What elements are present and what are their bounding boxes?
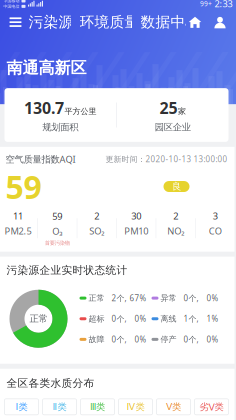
staticText: PM10 [124, 225, 148, 237]
staticText: CO [209, 225, 222, 237]
button[interactable]: 污染源 [28, 11, 70, 33]
staticText: 99+ [200, 0, 212, 8]
staticText: 污染源企业实时状态统计 [6, 264, 127, 277]
staticText: PM2.5 [4, 225, 31, 237]
staticText: 平方公里 [65, 106, 97, 116]
staticText: 全区各类水质分布 [6, 377, 94, 390]
button[interactable]: 劣Ⅴ类 [194, 399, 228, 415]
staticText: 环境质量 [79, 13, 139, 31]
staticText: NO₂ [167, 225, 184, 237]
staticText: 59 [5, 165, 41, 208]
staticText: 25 [159, 97, 177, 118]
staticText: 1% [206, 313, 218, 324]
staticText: 2:33 [214, 0, 232, 10]
staticText: Ⅰ类 [15, 401, 27, 413]
staticText: 2 [173, 210, 178, 222]
staticText: 污染源 [28, 13, 73, 31]
staticText: O₃ [52, 225, 62, 237]
button[interactable]: 数据中心 [140, 11, 185, 33]
staticText: 0% [134, 334, 146, 345]
button[interactable]: 环境质量 [79, 11, 131, 33]
staticText: Ⅳ类 [126, 401, 144, 413]
staticText: 良 [172, 181, 181, 192]
staticText: 0个, [111, 334, 126, 345]
staticText: 空气质量指数AQI [5, 153, 75, 165]
staticText: 南通高新区 [6, 58, 86, 78]
staticText: 正常 [88, 293, 104, 303]
staticText: 首要污染物 [45, 240, 70, 246]
staticText: 11 [13, 210, 23, 222]
staticText: 停产 [160, 334, 176, 344]
staticText: 0个, [183, 334, 198, 345]
staticText: 数据中心 [140, 13, 200, 31]
staticText: 规划面积 [42, 121, 78, 133]
staticText: 0% [206, 334, 218, 345]
button[interactable]: Ⅳ类 [118, 399, 152, 415]
staticText: 0% [134, 313, 146, 324]
staticText: 0% [206, 293, 218, 303]
staticText: 2 [94, 210, 99, 222]
button[interactable]: Menu [2, 11, 28, 33]
staticText: 30 [131, 210, 141, 222]
staticText: 家 [178, 106, 186, 116]
button[interactable]: Ⅰ类 [4, 399, 38, 415]
staticText: SO₂ [89, 225, 104, 237]
button[interactable]: Ⅴ类 [156, 399, 190, 415]
staticText: 2个, [111, 293, 126, 303]
staticText: Ⅲ类 [90, 401, 105, 413]
button[interactable]: Account [210, 11, 229, 33]
button[interactable]: Ⅱ类 [42, 399, 76, 415]
staticText: 3 [213, 210, 218, 222]
staticText: 0个, [111, 313, 126, 324]
staticText: 劣Ⅴ类 [199, 401, 223, 413]
staticText: 超标 [88, 314, 104, 324]
staticText: 67% [129, 293, 146, 303]
staticText: 正常 [29, 313, 47, 324]
staticText: 异常 [160, 293, 176, 303]
staticText: 中国移动 [3, 0, 19, 3]
staticText: 离线 [160, 314, 176, 324]
staticText: 中国电信 [3, 4, 19, 9]
staticText: 0个, [183, 293, 198, 303]
staticText: 59 [52, 210, 62, 222]
staticText: Ⅱ类 [52, 401, 66, 413]
staticText: 更新时间：2020-10-13 13:00:00 [105, 154, 227, 164]
button[interactable]: Ⅲ类 [80, 399, 114, 415]
staticText: 1个, [183, 313, 198, 324]
staticText: 故障 [88, 334, 104, 344]
staticText: 园区企业 [155, 121, 191, 133]
staticText: 130.7 [24, 97, 64, 118]
staticText: Ⅴ类 [166, 401, 181, 413]
button[interactable]: Home [185, 11, 204, 33]
